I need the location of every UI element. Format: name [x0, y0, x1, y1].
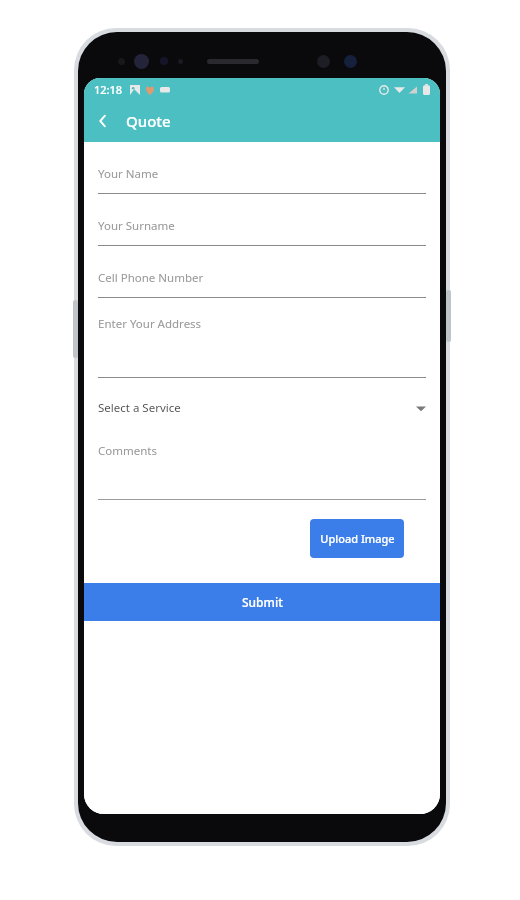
staticText: Quote: [126, 111, 171, 131]
button[interactable]: Submit: [84, 583, 440, 621]
staticText: Your Name: [98, 166, 159, 182]
button[interactable]: Your Surname: [98, 218, 426, 246]
button[interactable]: Back: [84, 102, 122, 140]
button[interactable]: Select a Service: [98, 400, 426, 416]
button[interactable]: Enter Your Address: [98, 316, 426, 378]
staticText: Enter Your Address: [98, 316, 202, 332]
staticText: Submit: [242, 594, 283, 610]
button[interactable]: Cell Phone Number: [98, 270, 426, 298]
button[interactable]: Upload Image: [310, 519, 404, 558]
staticText: Upload Image: [320, 531, 395, 546]
staticText: 12:18: [94, 82, 123, 97]
button[interactable]: Comments: [98, 443, 426, 500]
staticText: Your Surname: [98, 218, 175, 234]
staticText: Select a Service: [98, 400, 181, 416]
staticText: Comments: [98, 443, 157, 459]
staticText: Cell Phone Number: [98, 270, 204, 286]
button[interactable]: Your Name: [98, 166, 426, 194]
